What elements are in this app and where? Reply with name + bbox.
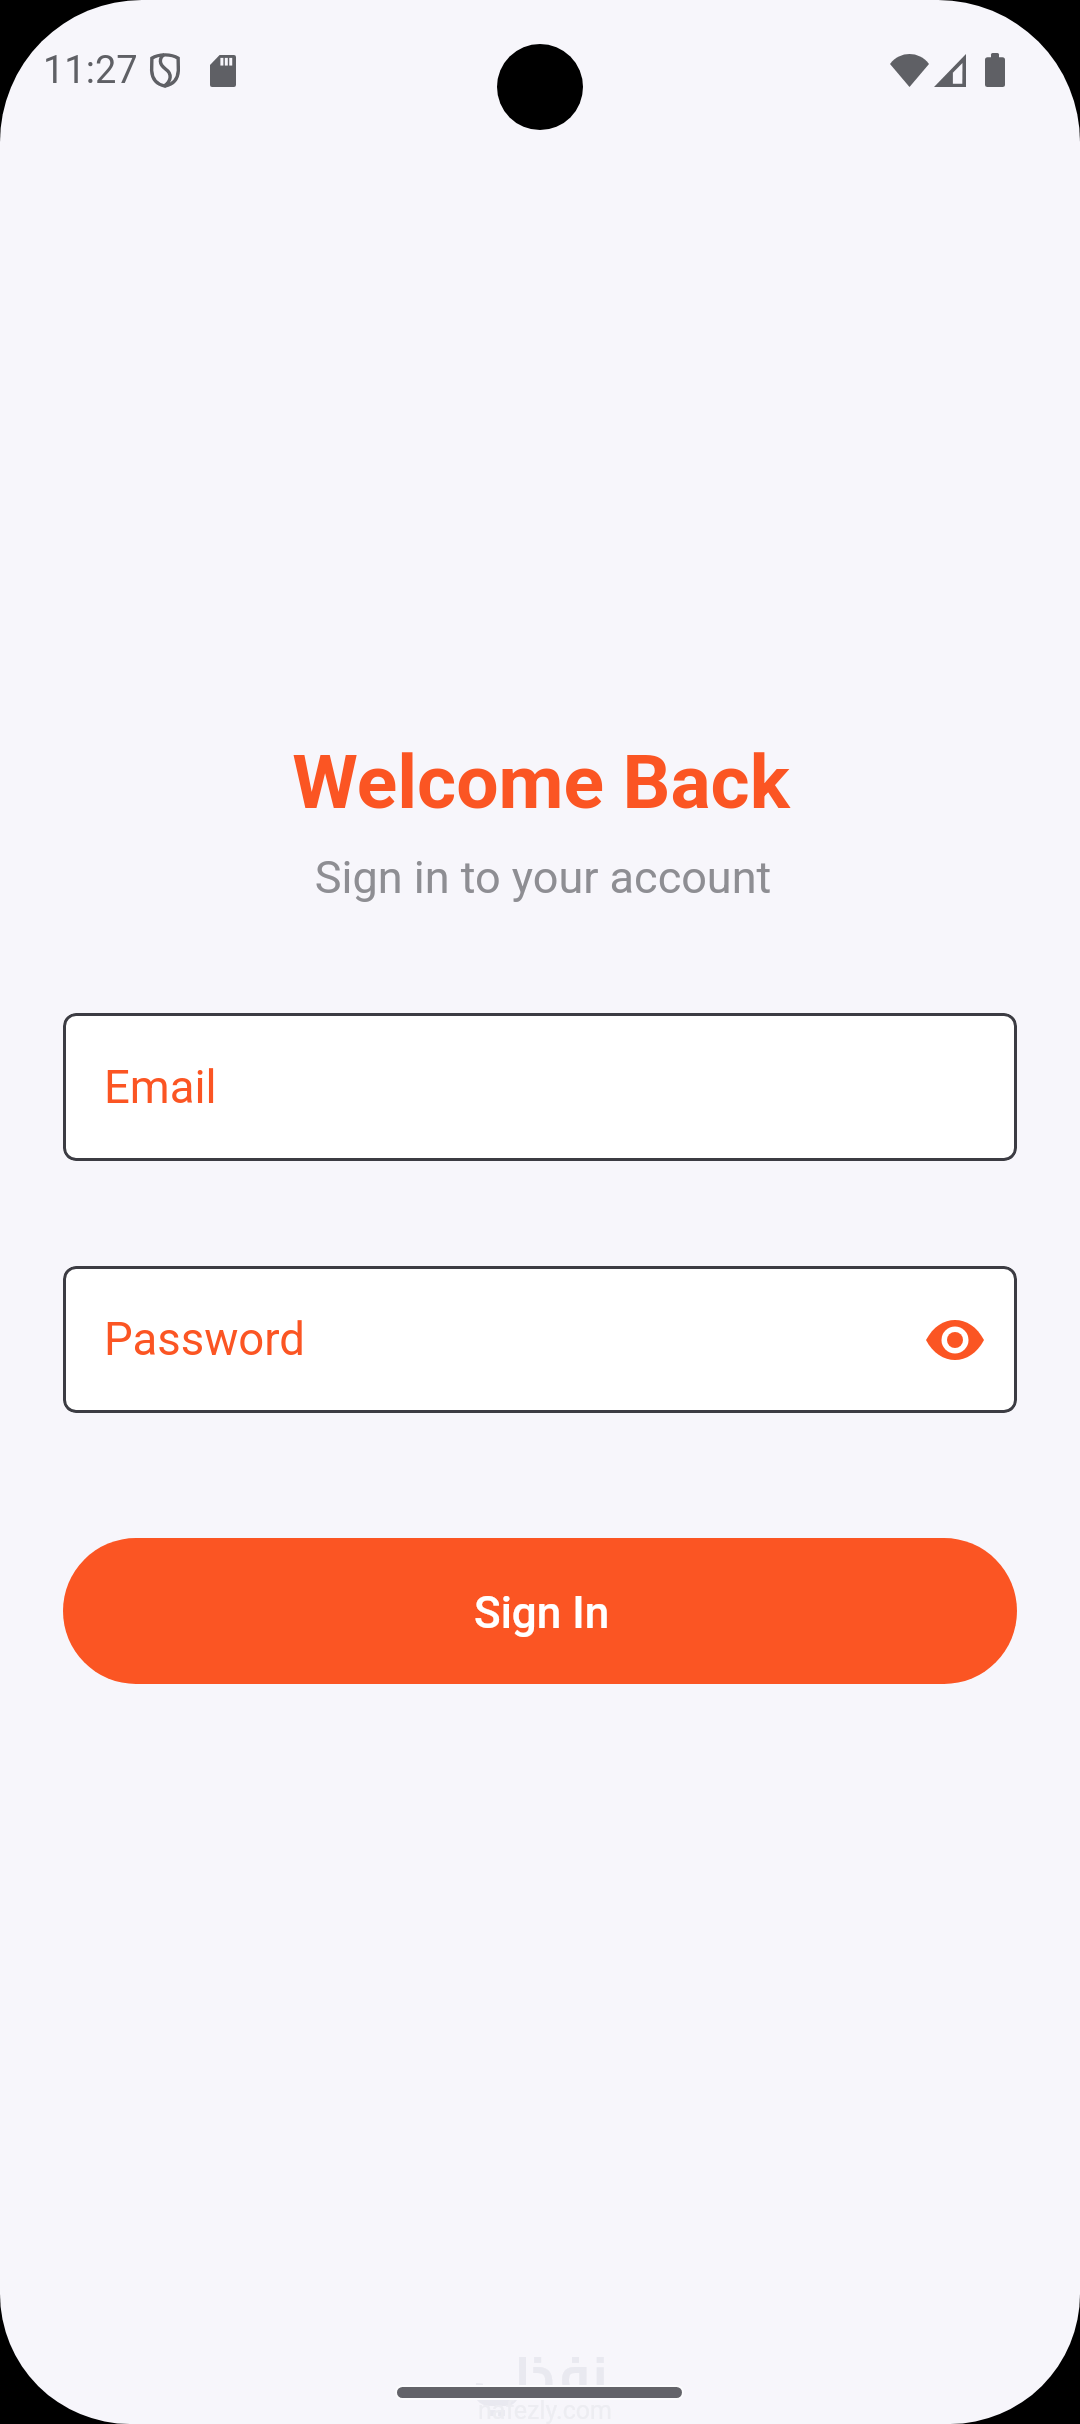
staticText: Welcome Back xyxy=(1,738,1080,826)
staticText: 11:27 xyxy=(43,48,138,93)
staticText: nafezly.com xyxy=(478,2396,612,2424)
staticText: Sign in to your account xyxy=(3,851,1080,904)
staticText: Sign In xyxy=(474,1587,610,1639)
button[interactable]: Password xyxy=(63,1266,1017,1413)
staticText: Password xyxy=(104,1313,305,1366)
button[interactable]: Show password xyxy=(923,1314,987,1366)
button[interactable]: Sign In xyxy=(63,1538,1017,1684)
button[interactable]: Email xyxy=(63,1013,1017,1161)
staticText: Email xyxy=(104,1061,217,1114)
staticText: نفذلي xyxy=(473,2327,608,2423)
